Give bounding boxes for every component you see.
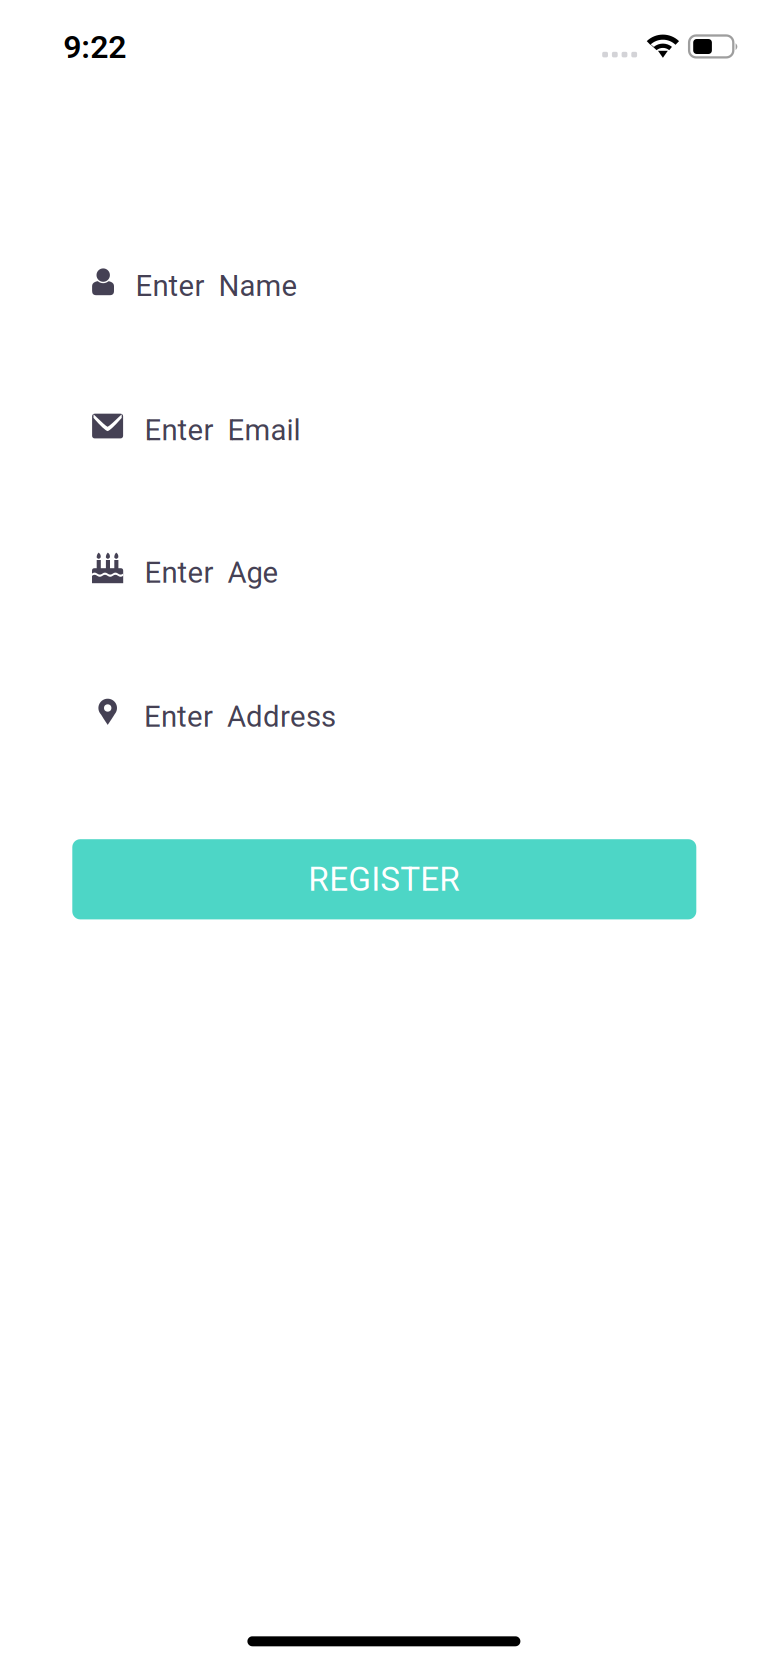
button[interactable]: Enter Address (92, 699, 696, 739)
staticText: Enter Name (135, 269, 297, 303)
staticText: Enter Address (144, 700, 336, 734)
staticText: REGISTER (308, 860, 460, 899)
staticText: 9:22 (63, 28, 126, 66)
button[interactable]: Enter Email (92, 412, 696, 452)
staticText: Enter Age (144, 556, 278, 590)
staticText: Enter Email (145, 413, 301, 447)
button[interactable]: REGISTER (72, 839, 696, 919)
button[interactable]: Time 9:22 (63, 28, 126, 66)
button[interactable]: Enter Name (92, 268, 696, 308)
button[interactable]: Enter Age (92, 553, 696, 593)
